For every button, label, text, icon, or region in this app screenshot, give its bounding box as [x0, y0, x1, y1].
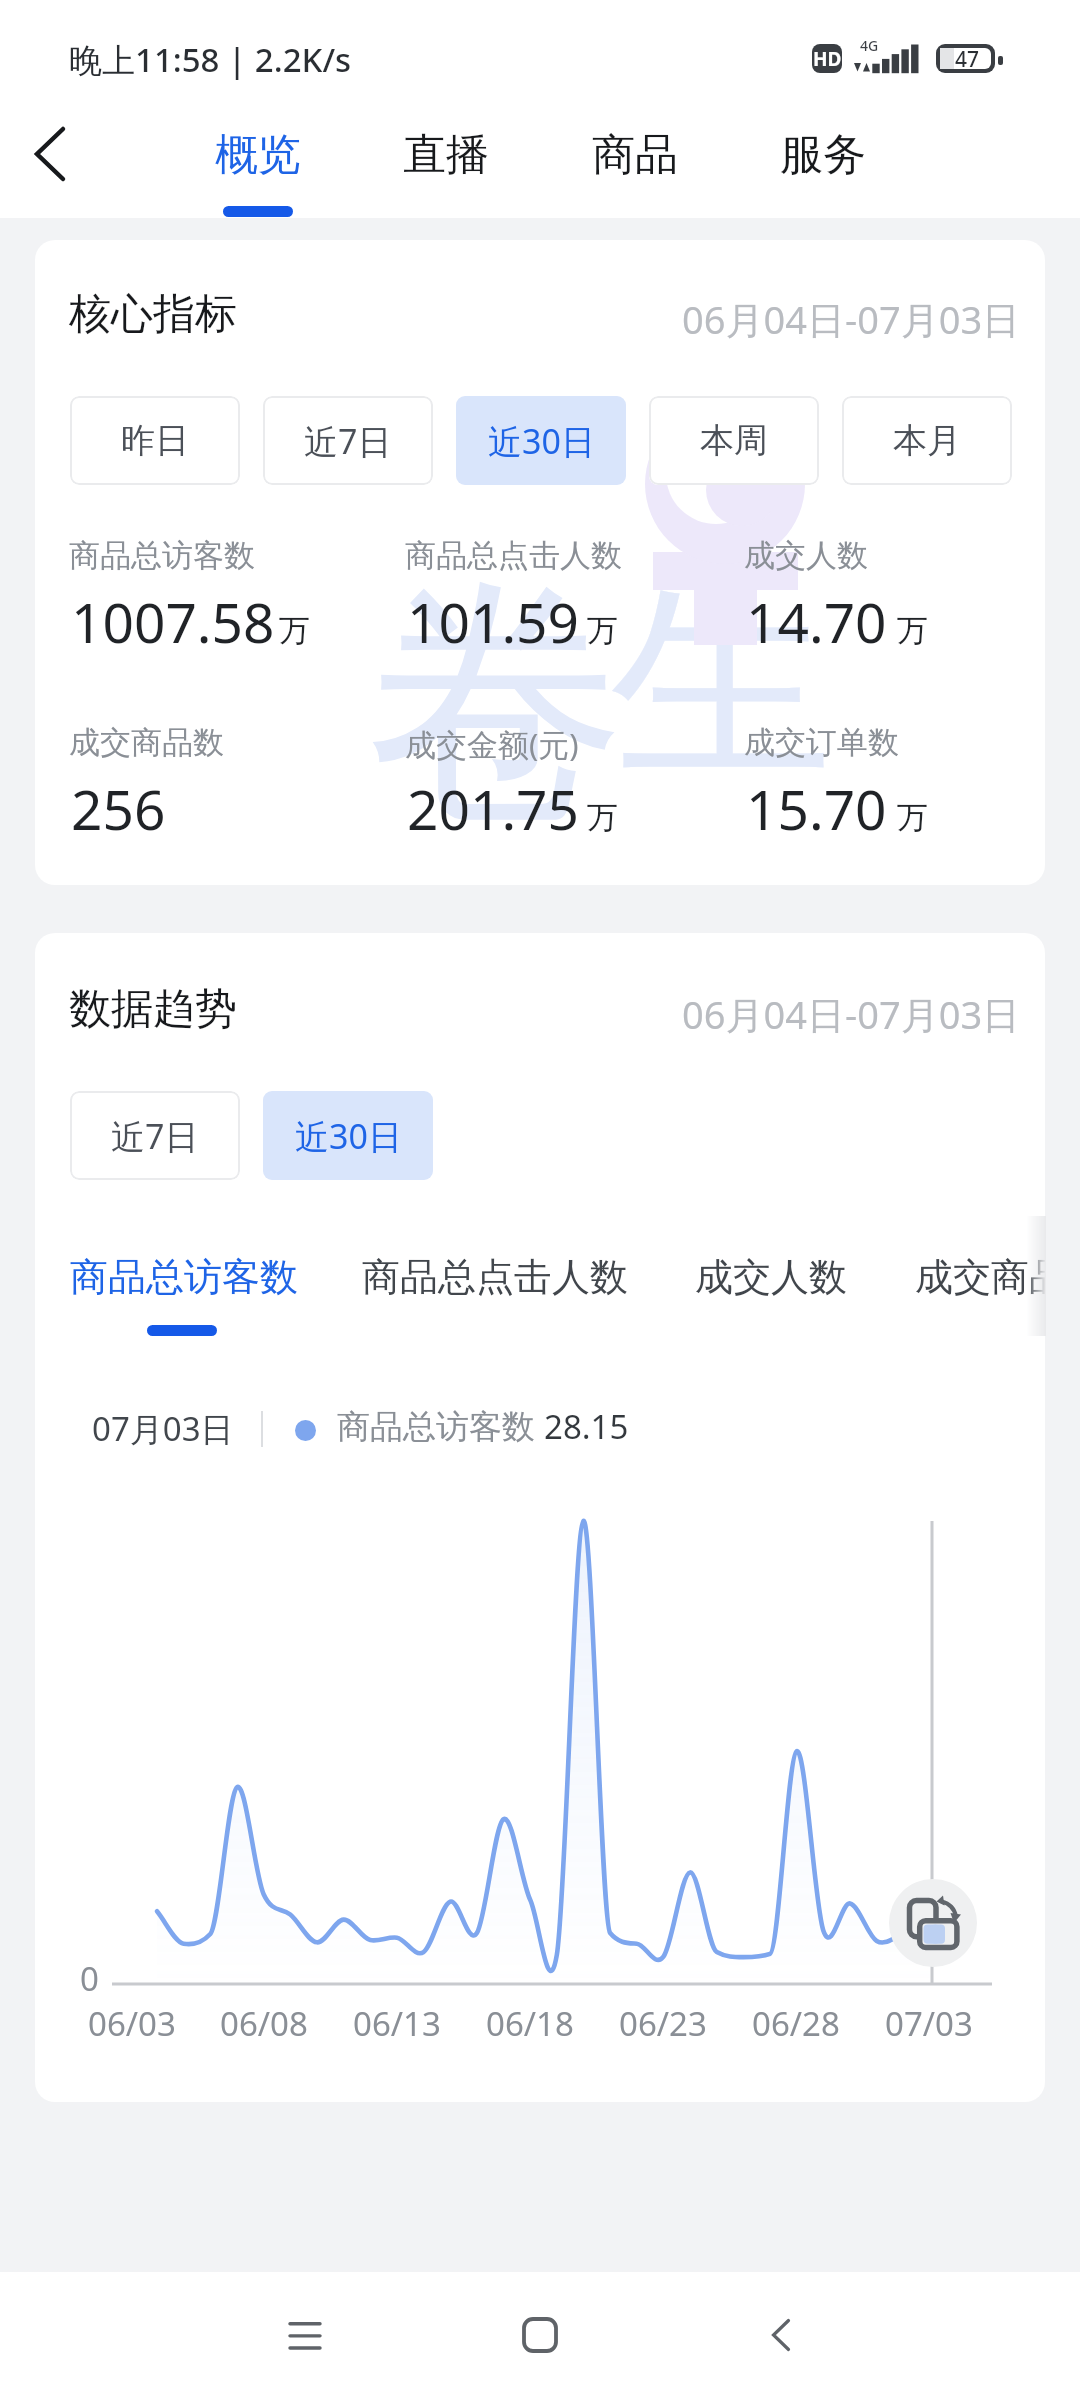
staticText: 本周 [700, 419, 768, 462]
button[interactable]: Home [485, 2280, 595, 2390]
staticText: 近7日 [304, 418, 392, 464]
staticText: 商品总访客数 [69, 536, 255, 575]
staticText: 本月 [893, 419, 961, 462]
staticText: 万 [897, 611, 928, 650]
staticText: 28.15 [544, 1404, 629, 1449]
staticText: 06月04日-07月03日 [682, 988, 1021, 1040]
staticText: 商品 [592, 128, 678, 182]
staticText: 数据趋势 [69, 983, 237, 1036]
staticText: 47 [955, 45, 980, 74]
staticText: 成交人数 [744, 536, 868, 575]
staticText: 成交商品数 [915, 1253, 1045, 1301]
staticText: 06月04日-07月03日 [682, 293, 1021, 345]
staticText: 万 [587, 611, 618, 650]
staticText: 14.70 [746, 584, 887, 659]
button[interactable]: 成交人数 [695, 1244, 853, 1310]
staticText: 概览 [215, 128, 301, 182]
staticText: 06/03 [88, 2001, 176, 2046]
staticText: 万 [587, 798, 618, 837]
button[interactable]: 近30日 [456, 396, 626, 485]
staticText: 商品总点击人数 [362, 1253, 628, 1301]
button[interactable]: Rotate chart [889, 1879, 977, 1967]
staticText: 成交金额(元) [405, 723, 579, 765]
staticText: 06/23 [619, 2001, 707, 2046]
button[interactable]: 成交商品数 [915, 1244, 1045, 1310]
staticText: 4G [860, 36, 879, 55]
staticText: 成交订单数 [744, 723, 899, 762]
button[interactable]: 本周 [649, 396, 819, 485]
staticText: 06/28 [752, 2001, 840, 2046]
button[interactable]: 近7日 [263, 396, 433, 485]
staticText: 生 [611, 540, 833, 820]
staticText: 直播 [403, 128, 489, 182]
staticText: 256 [71, 771, 166, 846]
button[interactable]: 昨日 [70, 396, 240, 485]
staticText: 服务 [780, 128, 866, 182]
staticText: 商品总访客数 [337, 1406, 535, 1448]
staticText: 近7日 [111, 1113, 199, 1159]
staticText: 06/18 [486, 2001, 574, 2046]
button[interactable]: 商品 [550, 107, 720, 203]
staticText: 商品总访客数 [70, 1253, 298, 1301]
staticText: 昨日 [121, 419, 189, 462]
staticText: 万 [279, 611, 310, 650]
button[interactable]: 概览 [173, 107, 343, 203]
staticText: 近30日 [295, 1113, 402, 1159]
button[interactable]: 服务 [738, 107, 908, 203]
staticText: 06/13 [353, 2001, 441, 2046]
staticText: 成交人数 [695, 1253, 847, 1301]
staticText: 1007.58 [71, 584, 275, 659]
staticText: 201.75 [407, 771, 580, 846]
staticText: 万 [897, 798, 928, 837]
button[interactable]: 近30日 [263, 1091, 433, 1180]
button[interactable]: Back [5, 109, 95, 199]
staticText: 晚上11:58 | 2.2K/s [69, 37, 352, 82]
staticText: 近30日 [488, 418, 595, 464]
staticText: 101.59 [407, 584, 580, 659]
button[interactable]: Back [726, 2280, 836, 2390]
staticText: 0 [80, 1956, 99, 2001]
staticText: 成交商品数 [69, 723, 224, 762]
staticText: 07/03 [885, 2001, 973, 2046]
button[interactable]: Recent apps [250, 2280, 360, 2390]
button[interactable]: 近7日 [70, 1091, 240, 1180]
button[interactable]: 商品总访客数 [70, 1244, 304, 1310]
staticText: 商品总点击人数 [405, 536, 622, 575]
staticText: 06/08 [220, 2001, 308, 2046]
button[interactable]: 直播 [361, 107, 531, 203]
button[interactable]: 本月 [842, 396, 1012, 485]
staticText: 07月03日 [92, 1406, 234, 1451]
staticText: 核心指标 [69, 288, 237, 341]
staticText: 15.70 [746, 771, 887, 846]
button[interactable]: 商品总点击人数 [362, 1244, 634, 1310]
staticText: 卷 [365, 540, 627, 870]
staticText: HD [813, 46, 842, 72]
